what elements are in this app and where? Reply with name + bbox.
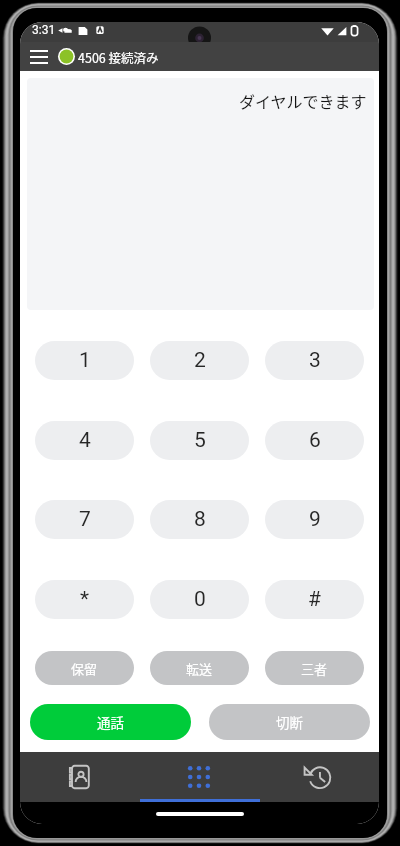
button[interactable]: Dialpad [139,752,259,802]
staticText: 三者 [301,659,328,678]
button[interactable]: 4 [35,421,134,460]
staticText: 4 [79,428,91,453]
staticText: * [80,587,90,612]
staticText: 4506 接続済み [78,48,159,66]
staticText: 2 [194,348,206,373]
staticText: 0 [194,587,206,612]
button[interactable]: Menu [28,44,50,69]
staticText: 3 [309,348,321,373]
button[interactable]: 1 [35,341,134,380]
button[interactable]: 三者 [265,651,364,685]
staticText: 保留 [71,659,98,678]
button[interactable]: 2 [150,341,249,380]
staticText: 通話 [97,712,124,732]
staticText: 9 [309,507,321,532]
button[interactable]: 転送 [150,651,249,685]
staticText: ダイヤルできます [239,89,367,112]
button[interactable]: 7 [35,500,134,539]
staticText: 1 [79,348,91,373]
staticText: 7 [79,507,91,532]
button[interactable]: 通話 [30,704,191,740]
button[interactable]: 8 [150,500,249,539]
staticText: # [308,587,321,612]
staticText: 8 [194,507,206,532]
button[interactable]: 9 [265,500,364,539]
button[interactable]: # [265,580,364,619]
button[interactable]: 5 [150,421,249,460]
button[interactable]: 6 [265,421,364,460]
button[interactable]: * [35,580,134,619]
staticText: 転送 [186,659,213,678]
staticText: 6 [309,428,321,453]
button[interactable]: 保留 [35,651,134,685]
button[interactable]: 3 [265,341,364,380]
button[interactable]: Contacts [20,752,139,802]
staticText: 切断 [276,712,303,732]
button[interactable]: History [259,752,379,802]
staticText: 3:31 [32,23,56,37]
staticText: 5 [194,428,206,453]
button[interactable]: 0 [150,580,249,619]
button[interactable]: 切断 [209,704,370,740]
